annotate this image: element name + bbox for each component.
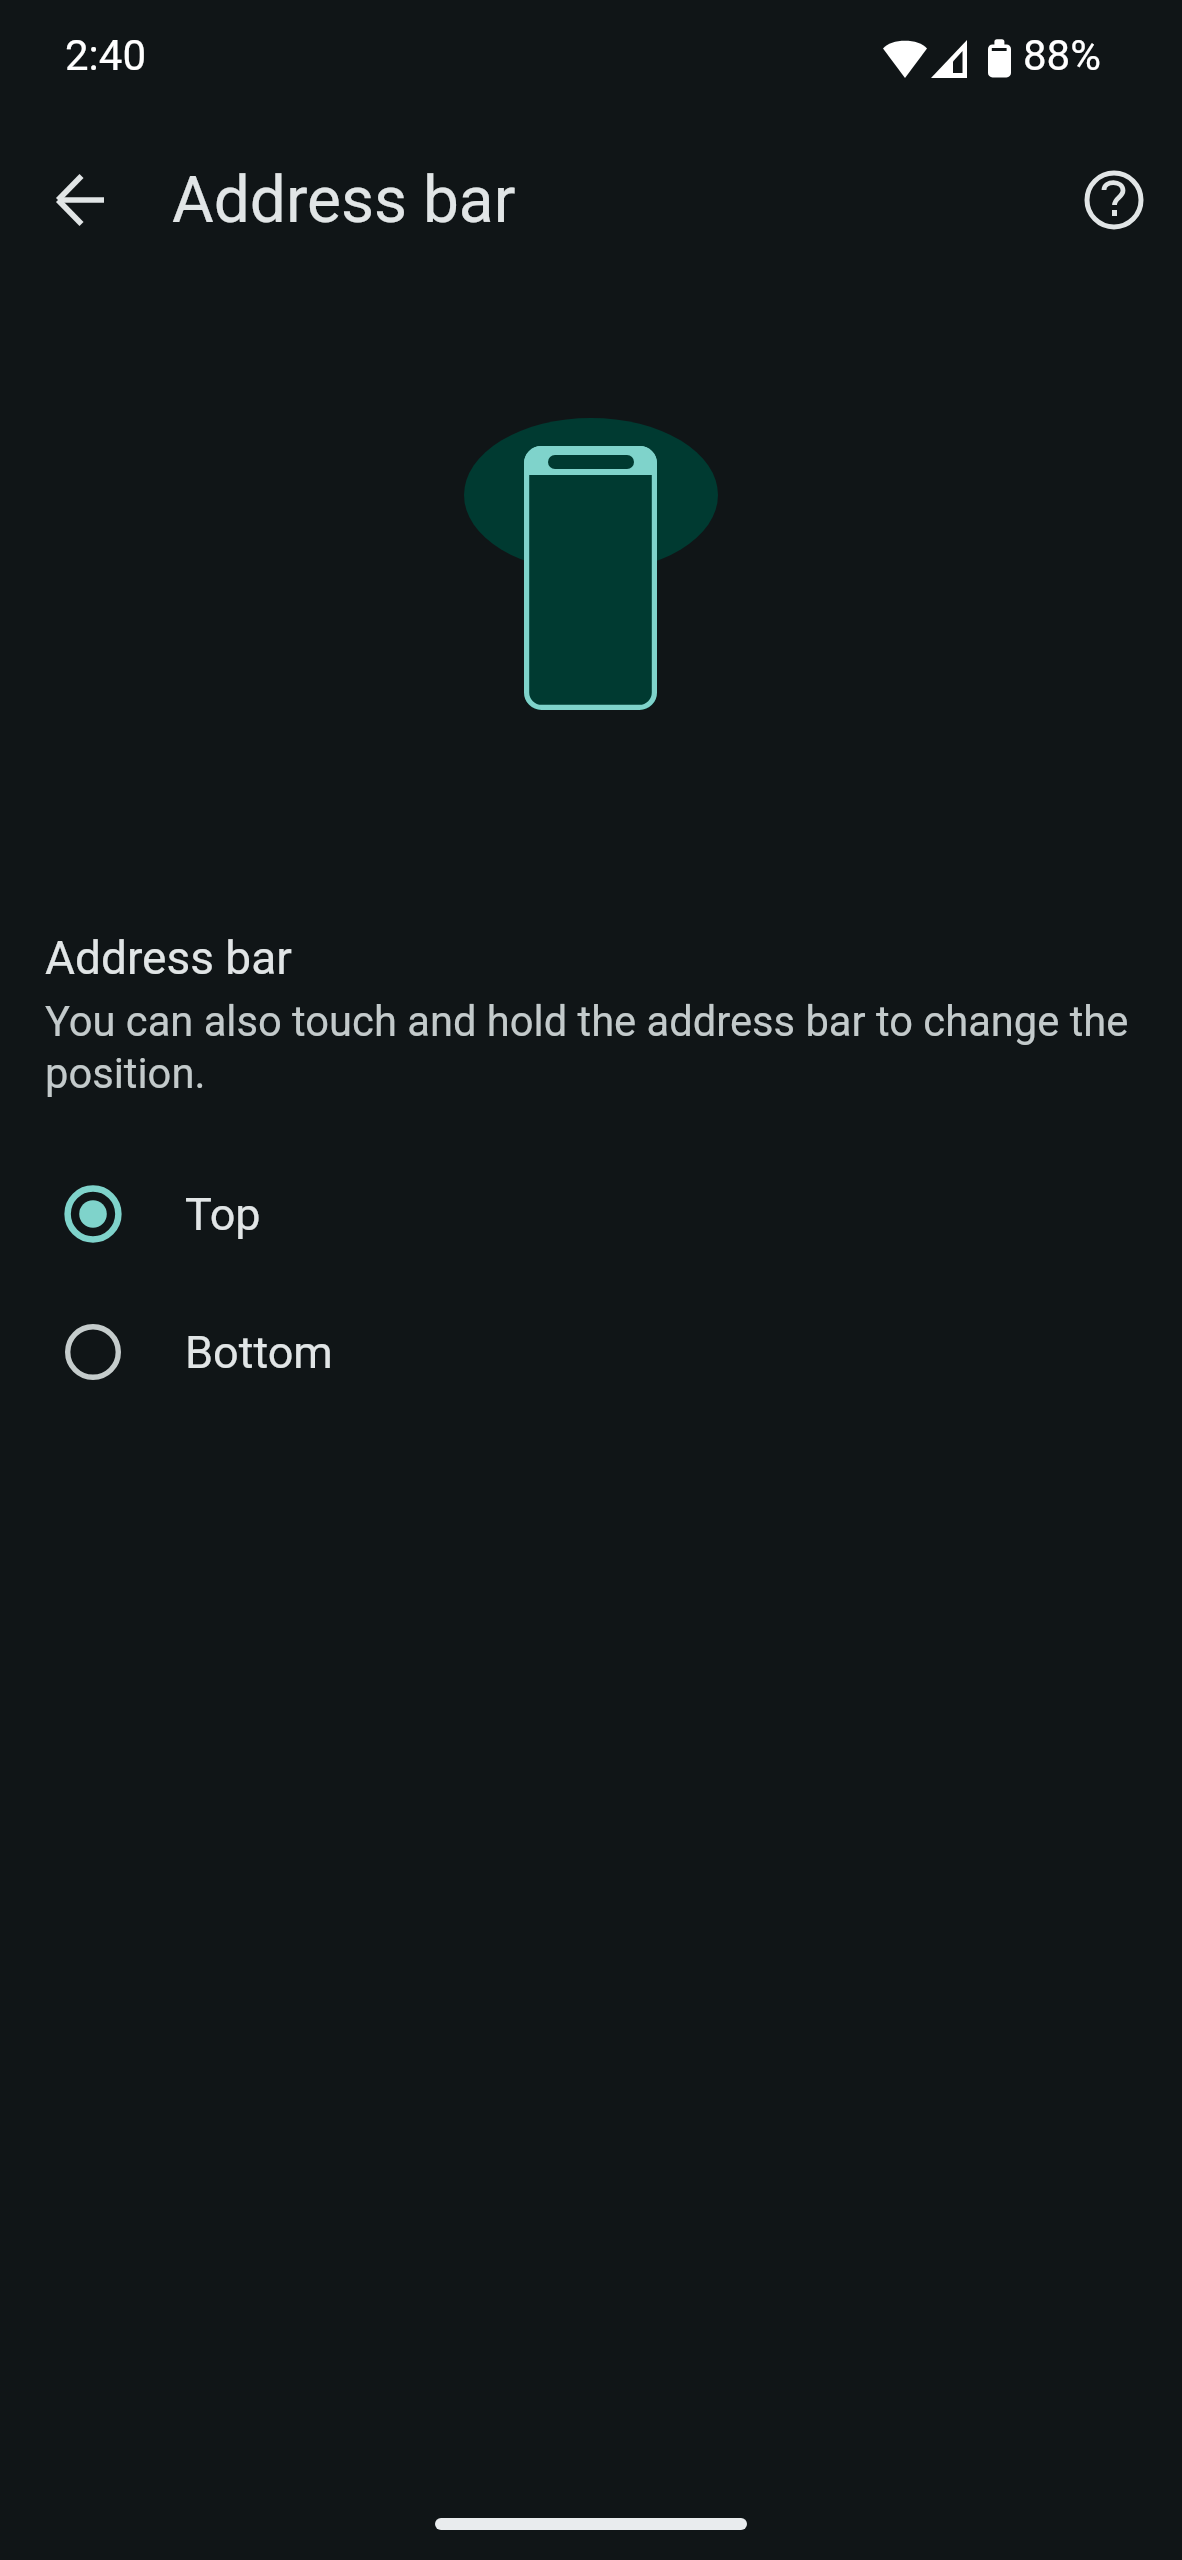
staticText: Address bar	[172, 163, 516, 238]
staticText: 88%	[1023, 31, 1101, 80]
button[interactable]: Back	[33, 152, 129, 248]
button[interactable]: Bottom	[0, 1283, 1182, 1421]
staticText: Top	[185, 1188, 261, 1241]
button[interactable]: Top	[0, 1145, 1182, 1283]
staticText: Address bar	[45, 931, 292, 985]
staticText: You can also touch and hold the address …	[45, 997, 1145, 1098]
staticText: 2:40	[65, 31, 146, 80]
staticText: Bottom	[185, 1326, 333, 1379]
button[interactable]: Help	[1065, 151, 1162, 248]
